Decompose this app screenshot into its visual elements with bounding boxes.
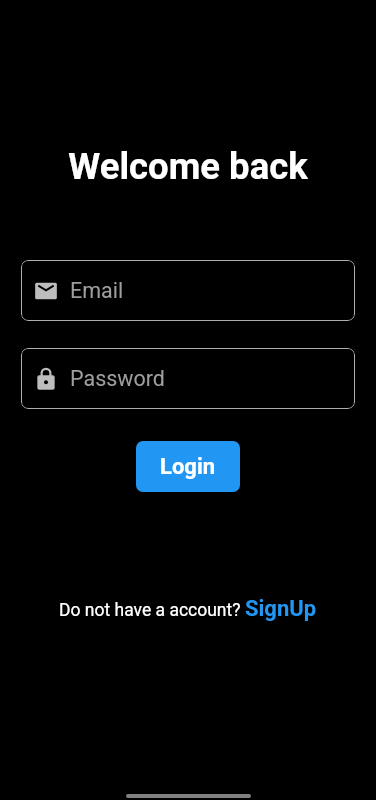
staticText: Do not have a account? <box>59 600 245 621</box>
staticText: Email <box>70 278 124 303</box>
other: Password <box>33 366 59 392</box>
button[interactable]: Password <box>21 348 355 409</box>
staticText: Password <box>70 366 165 391</box>
staticText: SignUp <box>245 596 317 622</box>
other: Email <box>33 278 59 304</box>
staticText: Welcome back <box>0 145 376 188</box>
button[interactable]: Login <box>136 441 240 492</box>
staticText: Login <box>160 454 216 480</box>
button[interactable]: Email <box>21 260 355 321</box>
button[interactable]: SignUp <box>245 596 317 622</box>
